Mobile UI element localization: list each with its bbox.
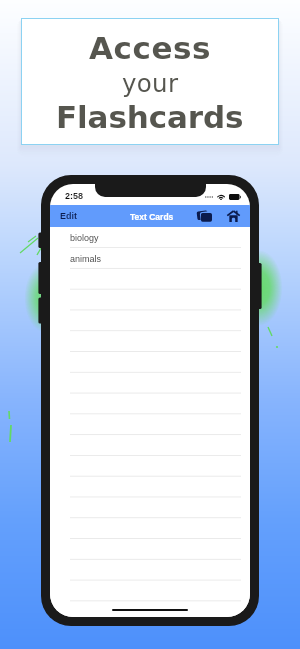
staticText: Flashcards [56,99,244,135]
staticText: Edit [60,211,77,221]
staticText: Text Cards [130,212,174,221]
button[interactable]: Home [216,206,250,226]
button[interactable]: biology [50,227,250,248]
staticText: your [122,69,179,98]
staticText: biology [70,233,99,243]
button[interactable]: animals [50,248,250,269]
staticText: Access [89,30,211,66]
staticText: 2:58 [65,191,84,201]
button[interactable]: Edit [50,207,85,225]
button[interactable]: Card stacks [193,206,216,226]
staticText: animals [70,254,102,264]
